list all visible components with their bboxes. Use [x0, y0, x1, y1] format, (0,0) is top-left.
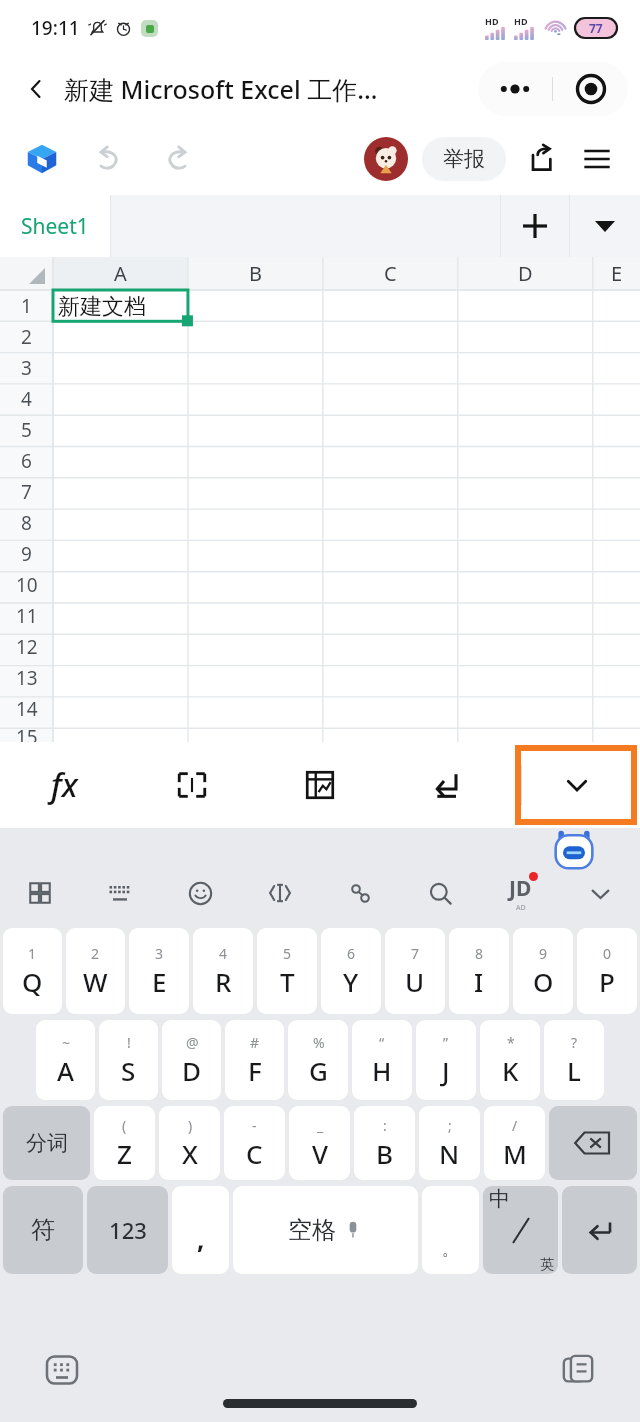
staticText: G: [309, 1053, 328, 1088]
button[interactable]: Keyboard: [80, 862, 160, 924]
staticText: ;: [448, 1116, 452, 1135]
button[interactable]: !: [99, 1020, 158, 1100]
button[interactable]: Sheet1: [0, 195, 110, 257]
button[interactable]: Add sheet: [501, 195, 569, 257]
staticText: ,: [197, 1221, 205, 1256]
button[interactable]: Cursor: [240, 862, 320, 924]
staticText: Z: [117, 1136, 132, 1171]
staticText: T: [280, 964, 295, 999]
button[interactable]: 分词: [3, 1106, 90, 1180]
button[interactable]: (: [94, 1106, 155, 1180]
button[interactable]: 。: [422, 1186, 479, 1274]
button[interactable]: App: [16, 133, 68, 185]
staticText: %: [313, 1033, 325, 1052]
button[interactable]: 9: [513, 928, 573, 1014]
button[interactable]: Assistant: [552, 828, 596, 862]
button[interactable]: ?: [544, 1020, 604, 1100]
staticText: I: [474, 964, 484, 999]
staticText: Q: [22, 964, 43, 999]
button[interactable]: Collapse: [521, 751, 631, 819]
staticText: 新建 Microsoft Excel 工作…: [64, 72, 378, 106]
button[interactable]: Wrap text: [384, 742, 512, 828]
button[interactable]: ~: [36, 1020, 95, 1100]
button[interactable]: Search: [400, 862, 480, 924]
button[interactable]: Chart: [256, 742, 384, 828]
button[interactable]: 3: [129, 928, 189, 1014]
staticText: #: [250, 1033, 260, 1052]
staticText: P: [599, 964, 615, 999]
button[interactable]: Hide: [560, 862, 640, 924]
button[interactable]: Select range: [128, 742, 256, 828]
button[interactable]: 8: [449, 928, 509, 1014]
button[interactable]: Sheet list: [570, 195, 640, 257]
button[interactable]: Redo: [152, 133, 204, 185]
button[interactable]: Switch keyboard: [40, 1348, 84, 1392]
button[interactable]: #: [225, 1020, 284, 1100]
button[interactable]: “: [352, 1020, 412, 1100]
button[interactable]: 7: [385, 928, 445, 1014]
staticText: @: [186, 1033, 199, 1052]
button[interactable]: Emoji: [160, 862, 240, 924]
button[interactable]: 1: [3, 928, 62, 1014]
button[interactable]: Clip: [320, 862, 400, 924]
staticText: H: [372, 1053, 392, 1088]
staticText: 14: [16, 696, 38, 722]
staticText: C: [384, 260, 397, 287]
button[interactable]: @: [162, 1020, 221, 1100]
staticText: Sheet1: [21, 212, 89, 241]
staticText: 10: [16, 572, 38, 598]
button[interactable]: 空格: [233, 1186, 418, 1274]
button[interactable]: 2: [66, 928, 125, 1014]
button[interactable]: ;: [419, 1106, 480, 1180]
staticText: W: [83, 964, 108, 999]
staticText: 11: [16, 603, 38, 629]
button[interactable]: 6: [321, 928, 381, 1014]
staticText: JD: [509, 874, 532, 903]
button[interactable]: _: [289, 1106, 350, 1180]
button[interactable]: :: [354, 1106, 415, 1180]
button[interactable]: Account: [364, 137, 408, 181]
button[interactable]: *: [480, 1020, 540, 1100]
button[interactable]: More: [478, 62, 552, 116]
button[interactable]: Record: [553, 62, 628, 116]
button[interactable]: ): [159, 1106, 220, 1180]
staticText: 举报: [443, 146, 485, 172]
button[interactable]: 4: [193, 928, 253, 1014]
button[interactable]: 中: [483, 1186, 558, 1274]
button[interactable]: ”: [416, 1020, 476, 1100]
staticText: 。: [442, 1239, 459, 1260]
staticText: 1: [28, 944, 37, 963]
staticText: 9: [539, 944, 548, 963]
button[interactable]: Back: [14, 67, 58, 111]
button[interactable]: -: [224, 1106, 285, 1180]
staticText: C: [246, 1136, 263, 1171]
button[interactable]: 0: [577, 928, 637, 1014]
button[interactable]: Clipboard: [556, 1348, 600, 1392]
staticText: D: [182, 1053, 202, 1088]
staticText: F: [248, 1053, 262, 1088]
staticText: ?: [571, 1033, 578, 1052]
button[interactable]: Menu: [572, 134, 622, 184]
button[interactable]: 123: [87, 1186, 168, 1274]
button[interactable]: Apps: [0, 862, 80, 924]
button[interactable]: 5: [257, 928, 317, 1014]
button[interactable]: %: [288, 1020, 348, 1100]
staticText: 15: [16, 724, 38, 742]
staticText: 4: [21, 386, 32, 412]
staticText: ): [188, 1116, 193, 1135]
button[interactable]: 举报: [422, 137, 506, 181]
button[interactable]: [549, 1106, 637, 1180]
button[interactable]: [562, 1186, 637, 1274]
staticText: 空格: [288, 1215, 336, 1245]
button[interactable]: Share: [516, 134, 566, 184]
button[interactable]: 符: [3, 1186, 83, 1274]
staticText: 12: [16, 634, 38, 660]
staticText: E: [152, 964, 167, 999]
button[interactable]: Undo: [82, 133, 134, 185]
button[interactable]: /: [484, 1106, 545, 1180]
button[interactable]: ,: [172, 1186, 229, 1274]
staticText: 英: [540, 1256, 554, 1274]
button[interactable]: Function: [0, 742, 128, 828]
button[interactable]: JD: [480, 862, 560, 924]
staticText: X: [182, 1136, 198, 1171]
